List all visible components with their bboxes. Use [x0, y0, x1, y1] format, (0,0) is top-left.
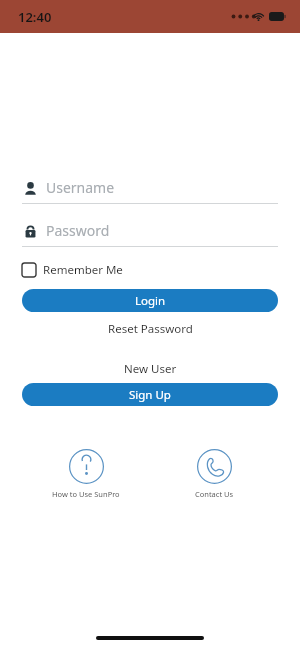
button[interactable]: Reset Password	[22, 318, 278, 340]
staticText: Password	[46, 221, 110, 240]
staticText: Sign Up	[129, 387, 171, 403]
staticText: Contact Us	[195, 489, 234, 499]
staticText: Reset Password	[108, 321, 193, 337]
staticText: New User	[124, 361, 177, 377]
button[interactable]: Username field	[22, 178, 278, 204]
button[interactable]: Remember Me	[22, 260, 123, 280]
button[interactable]: Login	[22, 289, 278, 312]
button[interactable]: Sign Up	[22, 383, 278, 406]
button[interactable]: How to Use SunPro	[22, 447, 150, 501]
staticText: Login	[135, 293, 166, 309]
button[interactable]: Password field	[22, 221, 278, 247]
button[interactable]: Contact Us	[150, 447, 278, 501]
staticText: Username	[46, 178, 115, 197]
staticText: 12:40	[18, 8, 52, 26]
staticText: How to Use SunPro	[52, 489, 120, 499]
staticText: Remember Me	[43, 262, 123, 278]
